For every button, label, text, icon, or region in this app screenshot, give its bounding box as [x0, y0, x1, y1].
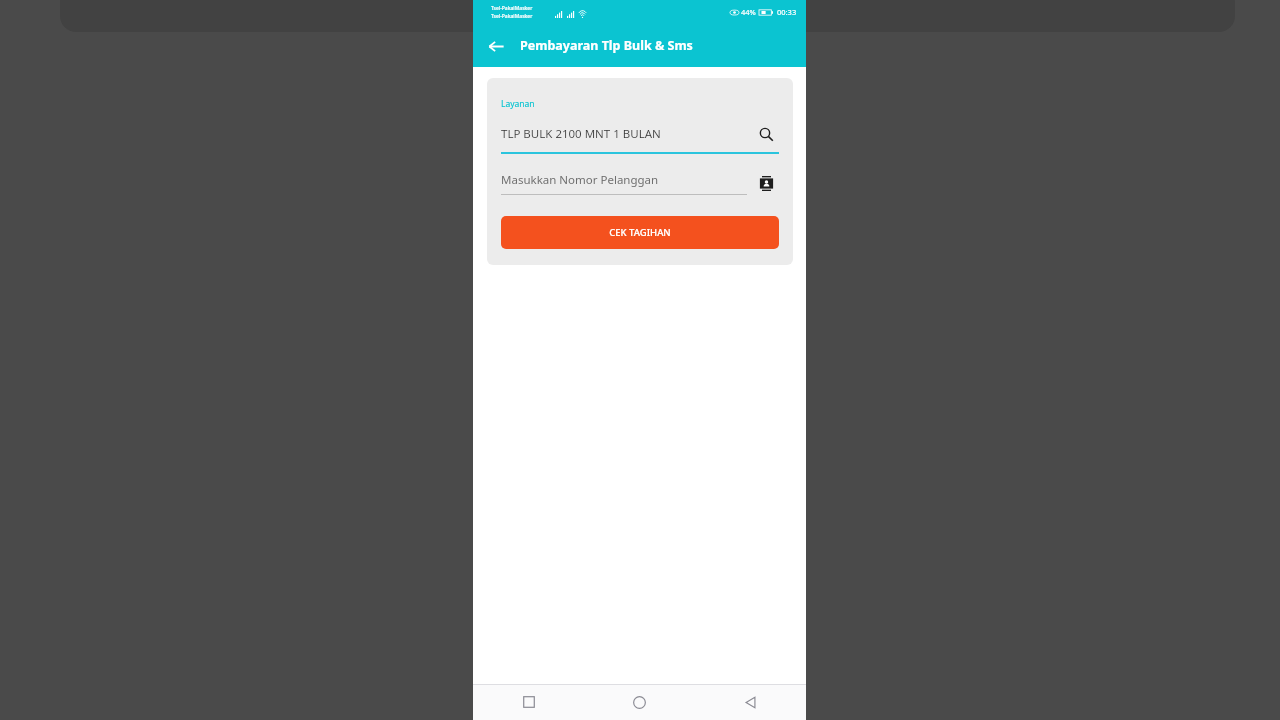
staticText: Tsel-PakaiMasker: [491, 5, 533, 12]
button[interactable]: Home: [584, 684, 695, 720]
staticText: Tsel-PakaiMasker: [491, 13, 533, 20]
button[interactable]: Masukkan Nomor Pelanggan: [501, 172, 747, 194]
button[interactable]: Back: [695, 684, 806, 720]
button[interactable]: CEK TAGIHAN: [501, 216, 779, 249]
button[interactable]: Pick contact: [753, 170, 779, 196]
button[interactable]: Back: [483, 33, 509, 59]
staticText: 44%: [741, 7, 756, 17]
staticText: 00:33: [777, 7, 797, 17]
staticText: Layanan: [501, 98, 535, 110]
staticText: Masukkan Nomor Pelanggan: [501, 172, 659, 188]
other: Search service: [753, 121, 779, 147]
button[interactable]: Recent apps: [473, 684, 584, 720]
staticText: TLP BULK 2100 MNT 1 BULAN: [501, 126, 753, 142]
staticText: CEK TAGIHAN: [609, 226, 671, 239]
button[interactable]: TLP BULK 2100 MNT 1 BULAN: [501, 121, 779, 152]
staticText: Pembayaran Tlp Bulk & Sms: [520, 37, 693, 54]
